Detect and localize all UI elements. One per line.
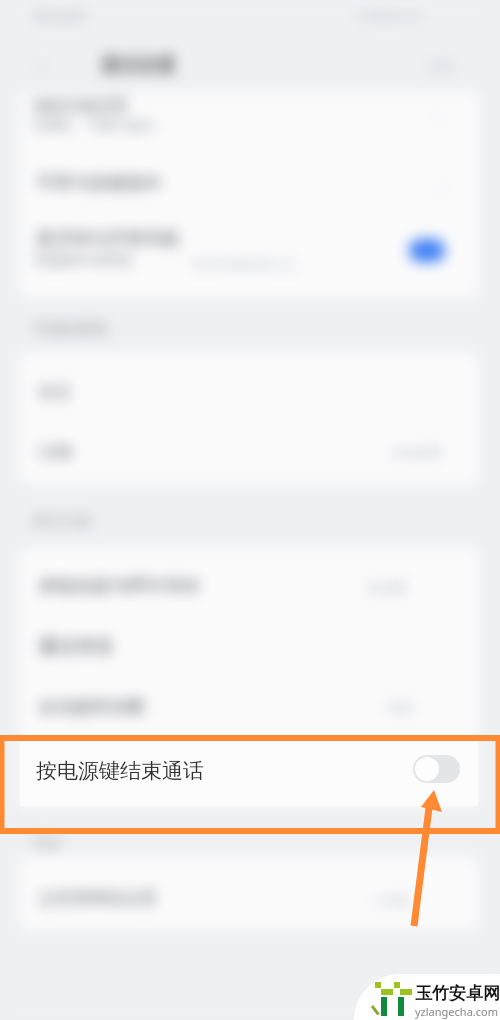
staticText: yzlangecha.com	[415, 1004, 498, 1019]
staticText: 自动接听挂断	[38, 696, 146, 719]
staticText: 通话录音	[38, 635, 114, 659]
staticText: 按电源键结束通话	[36, 758, 204, 784]
staticText: 手势与按键操作	[36, 172, 162, 195]
staticText: 日期	[38, 442, 72, 463]
staticText: 来电转接与呼叫等待	[38, 575, 200, 598]
staticText: 常规设置项	[33, 320, 108, 339]
staticText: 辅助功能设置	[33, 96, 129, 116]
staticText: 玉竹安卓网	[415, 983, 500, 1004]
staticText: 更多	[33, 834, 63, 853]
staticText: 快捷操作设置项	[34, 252, 132, 270]
staticText: 运营商网络设置	[38, 888, 157, 909]
button[interactable]: End call with power button toggle	[413, 755, 460, 783]
button[interactable]: 按电源键结束通话	[20, 741, 478, 806]
staticText: 通话设置	[100, 54, 176, 78]
staticText: 无障碍、字幕与放大	[31, 117, 157, 135]
staticText: 语言	[38, 382, 72, 403]
staticText: 悬浮球与手势导航	[36, 228, 180, 251]
